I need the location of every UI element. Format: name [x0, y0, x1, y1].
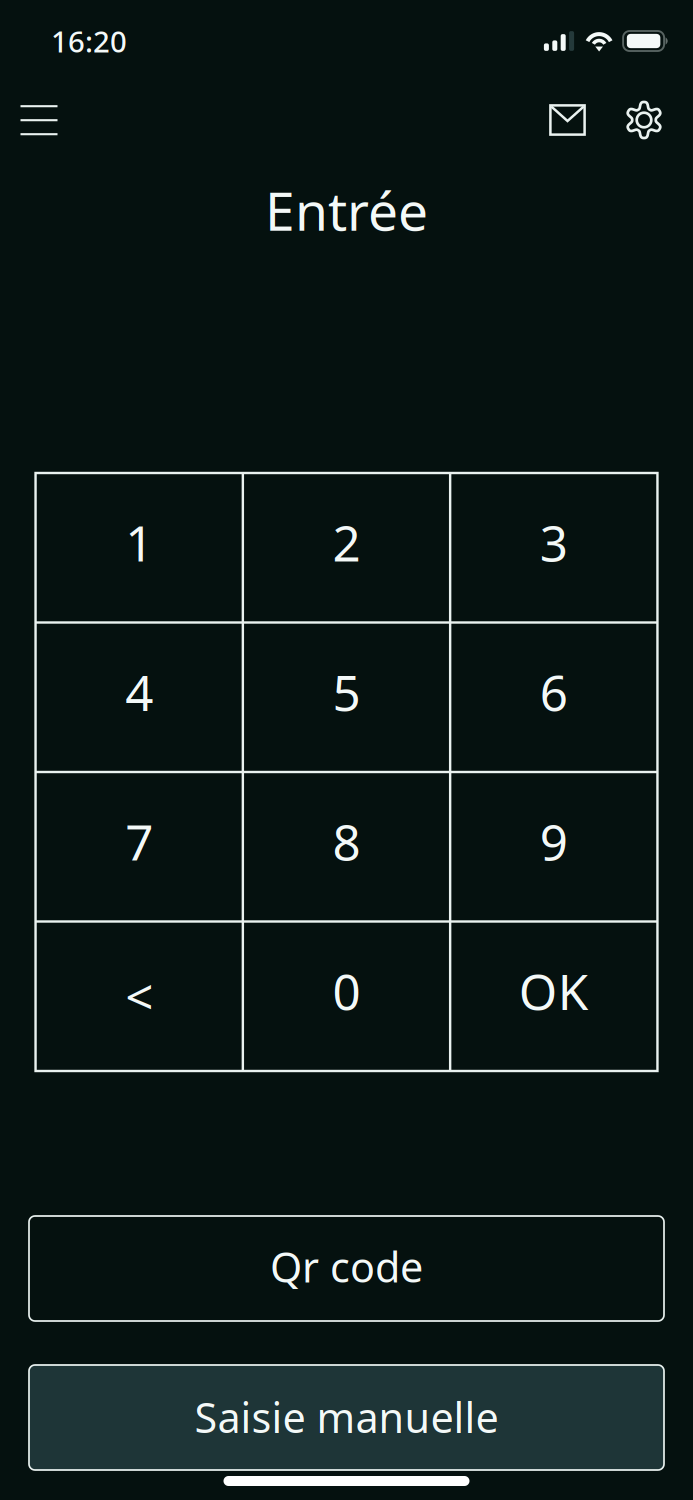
button[interactable]: Messages — [539, 91, 596, 149]
staticText: 0 — [332, 958, 360, 1023]
button[interactable]: 1 — [35, 473, 243, 622]
staticText: 9 — [540, 808, 568, 874]
staticText: 8 — [332, 808, 360, 874]
button[interactable]: 6 — [450, 622, 657, 772]
staticText: Qr code — [270, 1239, 423, 1294]
button[interactable]: < — [35, 921, 243, 1071]
staticText: 2 — [332, 509, 360, 575]
button[interactable]: 8 — [243, 772, 450, 921]
button[interactable]: 4 — [35, 622, 243, 772]
button[interactable]: Qr code — [29, 1216, 664, 1321]
staticText: Entrée — [265, 175, 428, 245]
button[interactable]: 0 — [243, 921, 450, 1071]
staticText: 1 — [125, 509, 153, 575]
staticText: 6 — [540, 659, 568, 724]
button[interactable]: Saisie manuelle — [29, 1365, 664, 1470]
button[interactable]: 3 — [450, 473, 657, 622]
button[interactable]: 7 — [35, 772, 243, 921]
button[interactable]: OK — [450, 921, 657, 1071]
button[interactable]: Menu — [10, 91, 68, 149]
staticText: 5 — [332, 659, 360, 724]
button[interactable]: 2 — [243, 473, 450, 622]
staticText: 4 — [125, 659, 153, 724]
staticText: OK — [519, 958, 589, 1023]
staticText: Saisie manuelle — [194, 1390, 498, 1444]
button[interactable]: Settings — [615, 91, 673, 149]
button[interactable]: 9 — [450, 772, 657, 921]
staticText: 16:20 — [51, 21, 127, 60]
button[interactable]: 5 — [243, 622, 450, 772]
staticText: < — [125, 963, 153, 1028]
staticText: 7 — [125, 808, 153, 874]
staticText: 3 — [540, 509, 568, 575]
